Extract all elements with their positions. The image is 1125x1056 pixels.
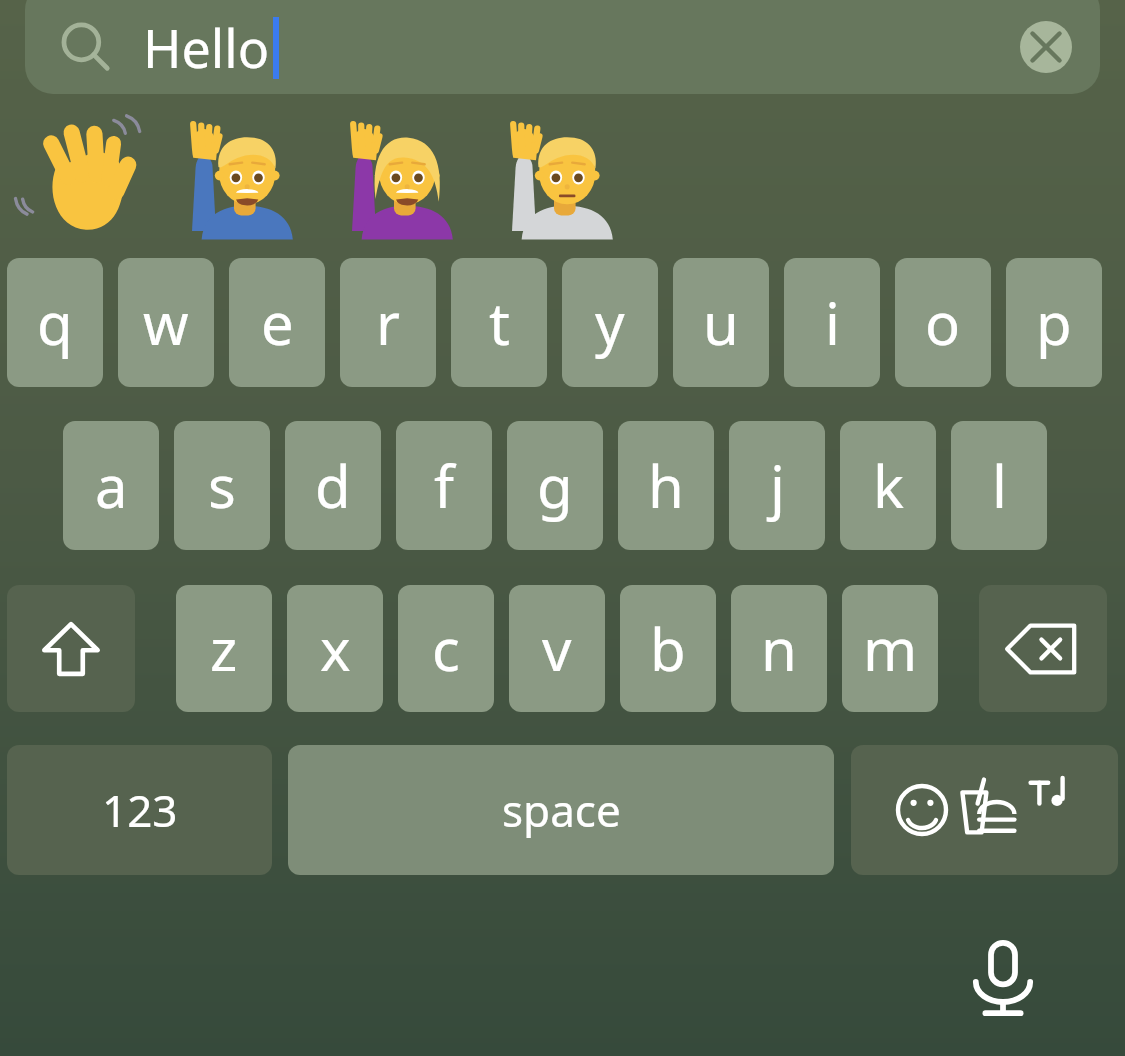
staticText: Hello <box>143 12 270 83</box>
button[interactable]: m <box>842 585 938 712</box>
staticText: a <box>95 446 128 525</box>
button[interactable]: y <box>562 258 658 387</box>
button[interactable]: Voice input <box>955 930 1051 1026</box>
staticText: u <box>703 283 739 362</box>
button[interactable]: u <box>673 258 769 387</box>
staticText: t <box>489 283 510 362</box>
button[interactable]: e <box>229 258 325 387</box>
button[interactable]: x <box>287 585 383 712</box>
button[interactable]: s <box>174 421 270 550</box>
button[interactable]: Man raising hand emoji <box>160 112 320 242</box>
staticText: c <box>432 609 460 688</box>
staticText: o <box>925 283 961 362</box>
button[interactable]: q <box>7 258 103 387</box>
button[interactable]: o <box>895 258 991 387</box>
staticText: n <box>761 609 797 688</box>
staticText: 123 <box>102 780 178 840</box>
button[interactable]: a <box>63 421 159 550</box>
button[interactable]: Shift <box>7 585 135 712</box>
staticText: f <box>434 446 454 525</box>
button[interactable]: f <box>396 421 492 550</box>
staticText: r <box>376 283 400 362</box>
staticText: j <box>770 446 785 525</box>
button[interactable]: w <box>118 258 214 387</box>
staticText: m <box>863 609 918 688</box>
button[interactable]: r <box>340 258 436 387</box>
staticText: q <box>37 283 73 362</box>
button[interactable]: l <box>951 421 1047 550</box>
button[interactable]: z <box>176 585 272 712</box>
button[interactable]: Woman raising hand emoji <box>320 112 480 242</box>
staticText: v <box>542 609 572 688</box>
button[interactable]: space <box>288 745 834 875</box>
button[interactable]: Clear text <box>1014 15 1078 79</box>
staticText: g <box>537 446 573 525</box>
staticText: b <box>650 609 686 688</box>
staticText: i <box>825 283 840 362</box>
staticText: k <box>873 446 904 525</box>
button[interactable]: n <box>731 585 827 712</box>
button[interactable]: t <box>451 258 547 387</box>
button[interactable]: Person raising hand emoji <box>480 112 640 242</box>
button[interactable]: k <box>840 421 936 550</box>
staticText: w <box>143 283 189 362</box>
button[interactable]: p <box>1006 258 1102 387</box>
staticText: x <box>320 609 351 688</box>
button[interactable]: g <box>507 421 603 550</box>
staticText: h <box>648 446 684 525</box>
staticText: space <box>502 780 621 840</box>
staticText: d <box>315 446 351 525</box>
button[interactable]: 123 <box>7 745 272 875</box>
button[interactable]: Backspace <box>979 585 1107 712</box>
button[interactable]: i <box>784 258 880 387</box>
button[interactable]: Emoji categories <box>851 745 1118 875</box>
button[interactable]: d <box>285 421 381 550</box>
button[interactable]: j <box>729 421 825 550</box>
staticText: y <box>595 283 625 362</box>
button[interactable]: Waving hand emoji <box>0 112 160 242</box>
staticText: p <box>1036 283 1072 362</box>
staticText: s <box>208 446 236 525</box>
staticText: e <box>261 283 294 362</box>
button[interactable]: v <box>509 585 605 712</box>
staticText: z <box>210 609 238 688</box>
staticText: l <box>992 446 1007 525</box>
button[interactable]: Hello <box>25 0 1100 94</box>
button[interactable]: b <box>620 585 716 712</box>
button[interactable]: c <box>398 585 494 712</box>
button[interactable]: h <box>618 421 714 550</box>
